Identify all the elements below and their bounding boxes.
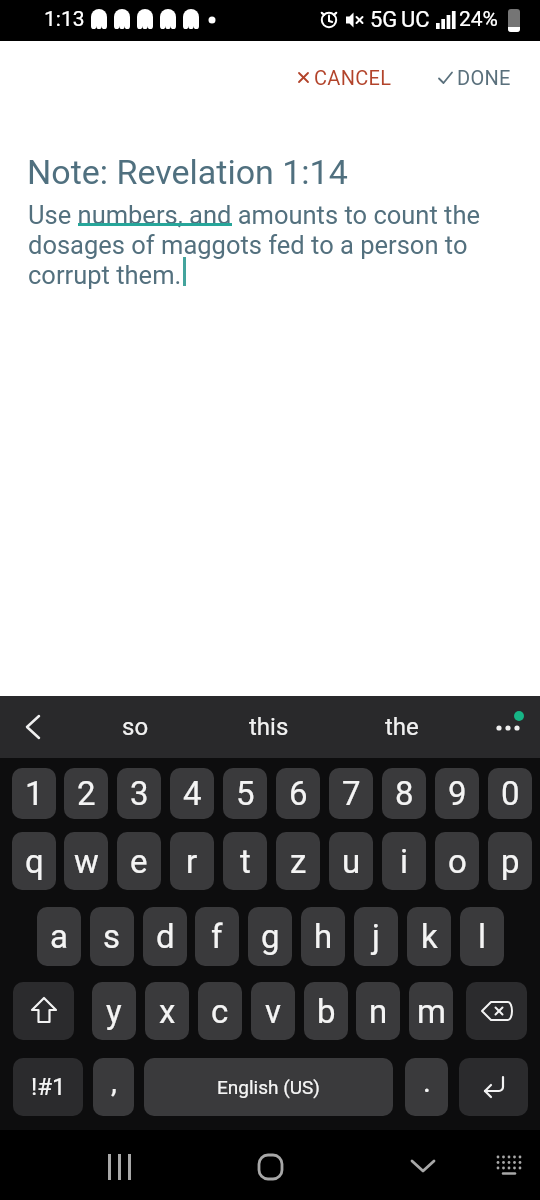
button[interactable]: . [405,1058,448,1116]
staticText: dosages of maggots fed to a person to [28,230,468,260]
staticText: y [106,992,122,1031]
button[interactable]: u [329,832,373,890]
button[interactable]: l [460,907,504,966]
button[interactable]: a [37,907,81,966]
staticText: this [249,713,289,741]
button[interactable]: CANCEL [298,62,392,92]
button[interactable]: English (US) [144,1058,393,1116]
staticText: c [211,992,229,1031]
staticText: h [314,917,333,956]
staticText: 9 [448,774,467,813]
staticText: corrupt them. [28,260,182,290]
button[interactable]: s [90,907,134,966]
staticText: 1 [25,774,44,813]
button[interactable]: n [356,982,400,1040]
staticText: l [478,917,487,956]
button[interactable]: , [93,1058,134,1116]
staticText: UC [401,7,430,33]
staticText: 7 [342,774,361,813]
staticText: !#1 [31,1073,66,1101]
staticText: 2 [77,774,96,813]
staticText: CANCEL [314,66,392,89]
staticText: the [385,713,419,741]
staticText: o [448,842,467,881]
button[interactable] [96,1143,144,1191]
button[interactable]: 7 [329,768,373,819]
button[interactable]: y [92,982,136,1040]
staticText: 6 [289,774,308,813]
staticText: b [317,992,336,1031]
button[interactable]: h [301,907,345,966]
button[interactable] [466,982,527,1040]
staticText: f [211,917,223,956]
button[interactable]: k [407,907,451,966]
staticText: Note: Revelation 1:14 [27,152,348,192]
staticText: 0 [501,774,520,813]
button[interactable]: 6 [276,768,320,819]
button[interactable]: g [248,907,292,966]
button[interactable] [399,1143,447,1191]
staticText: a [50,917,68,956]
button[interactable]: z [276,832,320,890]
staticText: m [417,992,446,1031]
button[interactable] [246,1143,294,1191]
staticText: Use numbers, and amounts to count the [28,200,481,230]
staticText: p [501,842,520,881]
staticText: j [372,917,380,956]
button[interactable]: v [251,982,295,1040]
button[interactable]: 8 [382,768,426,819]
staticText: x [159,992,176,1031]
button[interactable]: c [198,982,242,1040]
button[interactable]: i [382,832,426,890]
button[interactable]: d [143,907,187,966]
button[interactable]: 5 [223,768,267,819]
button[interactable]: DONE [438,62,511,92]
button[interactable]: 9 [435,768,479,819]
button[interactable]: f [195,907,239,966]
button[interactable]: o [435,832,479,890]
button[interactable]: e [117,832,161,890]
staticText: s [103,917,121,956]
staticText: DONE [457,66,511,89]
button[interactable]: so [90,696,180,758]
staticText: . [423,1064,431,1099]
button[interactable]: the [357,696,447,758]
staticText: t [240,842,251,881]
staticText: 3 [130,774,149,813]
button[interactable]: w [64,832,108,890]
staticText: 24% [459,7,498,32]
staticText: n [369,992,388,1031]
staticText: e [130,842,148,881]
staticText: r [186,842,198,881]
button[interactable]: m [409,982,453,1040]
button[interactable]: j [354,907,398,966]
button[interactable]: 4 [170,768,214,819]
button[interactable]: r [170,832,214,890]
button[interactable]: x [145,982,189,1040]
staticText: 5G [370,7,398,33]
button[interactable] [459,1058,528,1116]
button[interactable]: q [12,832,56,890]
staticText: 5 [236,774,255,813]
staticText: 4 [183,774,202,813]
button[interactable]: this [224,696,314,758]
button[interactable]: !#1 [13,1058,83,1116]
button[interactable]: t [223,832,267,890]
staticText: v [265,992,281,1031]
staticText: 8 [395,774,414,813]
staticText: i [400,842,409,881]
button[interactable]: 3 [117,768,161,819]
staticText: d [156,917,175,956]
button[interactable]: 2 [64,768,108,819]
button[interactable]: p [488,832,532,890]
staticText: z [290,842,307,881]
button[interactable] [13,982,74,1040]
staticText: u [342,842,361,881]
button[interactable] [486,1143,534,1191]
staticText: g [261,917,280,956]
staticText: , [111,1064,117,1099]
button[interactable]: b [304,982,348,1040]
staticText: 1:13 [44,7,85,32]
button[interactable]: 0 [488,768,532,819]
button[interactable]: 1 [12,768,56,819]
